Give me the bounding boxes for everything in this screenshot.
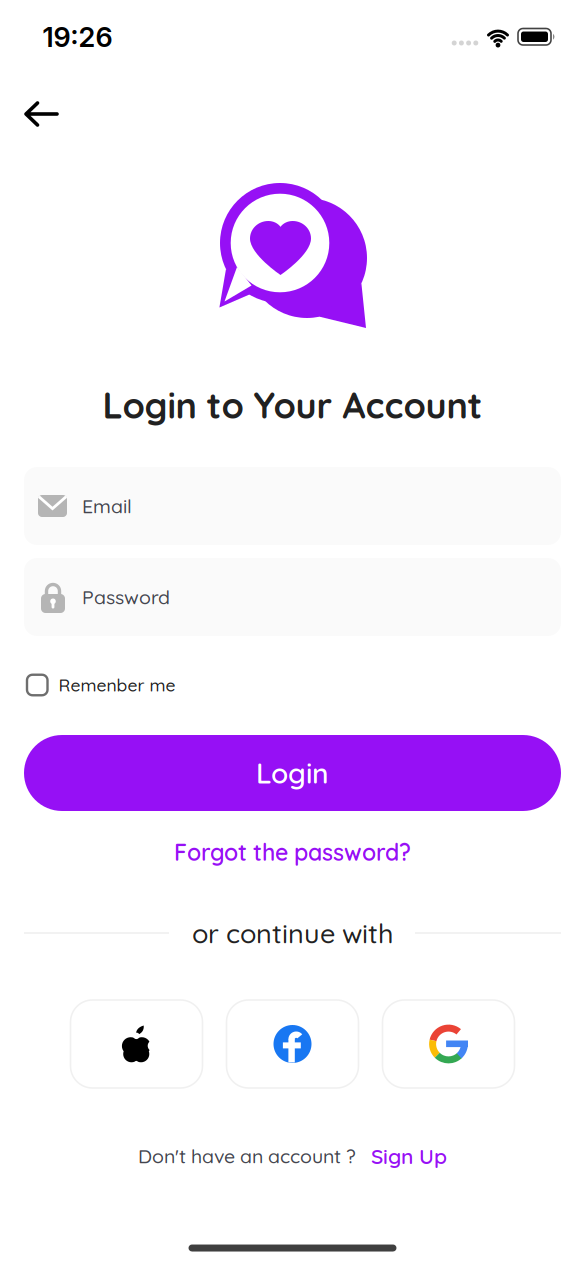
staticText: Email xyxy=(82,494,132,518)
staticText: Remenber me xyxy=(58,674,175,696)
button[interactable]: Back xyxy=(14,91,70,136)
staticText: Login xyxy=(256,755,329,790)
button[interactable]: Continue with Apple xyxy=(70,1000,202,1088)
button[interactable]: Forgot the password? xyxy=(174,838,411,866)
button[interactable]: Password xyxy=(24,558,561,636)
staticText: Forgot the password? xyxy=(174,838,411,866)
staticText: Don't have an account ? xyxy=(138,1144,356,1168)
button[interactable]: Login xyxy=(24,735,561,811)
button[interactable]: Continue with Facebook xyxy=(226,1000,358,1088)
button[interactable]: Continue with Google xyxy=(382,1000,514,1088)
staticText: Sign Up xyxy=(371,1143,447,1169)
button[interactable]: Remenber me xyxy=(27,674,175,696)
staticText: Password xyxy=(82,585,170,609)
staticText: 19:26 xyxy=(42,20,112,54)
staticText: or continue with xyxy=(192,916,393,950)
staticText: Login to Your Account xyxy=(102,382,482,427)
button[interactable]: Email xyxy=(24,467,561,545)
button[interactable]: Sign Up xyxy=(371,1143,447,1169)
